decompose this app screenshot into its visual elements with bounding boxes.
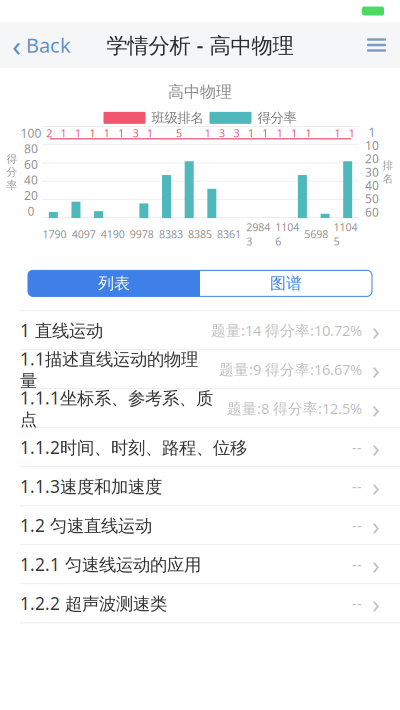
staticText: 100 [20, 125, 41, 141]
staticText: 班级排名 [151, 110, 203, 126]
button[interactable]: 1.1.3速度和加速度 [0, 467, 400, 505]
staticText: 1 [262, 126, 268, 140]
staticText: 1 [104, 126, 110, 140]
staticText: 1.2 匀速直线运动 [20, 514, 152, 537]
staticText: 1.1描述直线运动的物理量 [20, 347, 198, 391]
staticText: 1790 [42, 227, 66, 241]
staticText: 1.1.2时间、时刻、路程、位移 [20, 436, 247, 459]
staticText: ‹ [12, 25, 21, 64]
staticText: 学情分析 - 高中物理 [106, 31, 293, 59]
staticText: 率 [6, 179, 17, 192]
staticText: 1.2.1 匀速线运动的应用 [20, 553, 201, 576]
staticText: 1 [306, 126, 312, 140]
staticText: › [372, 586, 380, 620]
staticText: 5 [176, 126, 182, 140]
button[interactable]: 1.2 匀速直线运动 [0, 506, 400, 544]
staticText: 题量:8 得分率:12.5% [227, 399, 362, 418]
button[interactable]: 列表 [28, 270, 200, 296]
staticText: 40 [365, 177, 379, 193]
staticText: 3 [233, 126, 239, 140]
staticText: 排 [382, 159, 393, 172]
staticText: 1 [118, 126, 124, 140]
staticText: 80 [24, 141, 38, 157]
staticText: 1.2.2 超声波测速类 [20, 592, 167, 615]
staticText: 1.1.1坐标系、参考系、质点 [20, 386, 213, 430]
staticText: -- [352, 477, 362, 496]
button[interactable]: ‹ [0, 17, 71, 72]
staticText: -- [352, 516, 362, 535]
button[interactable]: 1.2.2 超声波测速类 [0, 584, 400, 622]
staticText: 9978 [130, 227, 154, 241]
staticText: 20 [24, 187, 38, 203]
staticText: 50 [365, 191, 379, 207]
staticText: 2 [46, 126, 52, 140]
staticText: › [372, 352, 380, 386]
button[interactable]: 1.1描述直线运动的物理量 [0, 350, 400, 388]
staticText: 得 [6, 152, 17, 165]
staticText: › [372, 508, 380, 542]
staticText: 高中物理 [168, 82, 232, 102]
staticText: › [372, 430, 380, 464]
staticText: › [372, 391, 380, 425]
staticText: 4190 [101, 227, 125, 241]
staticText: 3 [219, 126, 225, 140]
staticText: 1 直线运动 [20, 319, 103, 342]
staticText: 30 [365, 164, 379, 180]
staticText: 1 [277, 126, 283, 140]
staticText: 40 [24, 172, 38, 188]
staticText: 29843 [246, 220, 270, 248]
staticText: 题量:9 得分率:16.67% [219, 360, 362, 379]
staticText: 1 [75, 126, 81, 140]
staticText: 5698 [304, 227, 328, 241]
staticText: 4097 [72, 227, 96, 241]
staticText: -- [352, 594, 362, 613]
staticText: 8385 [188, 227, 212, 241]
staticText: › [372, 547, 380, 581]
staticText: 3 [133, 126, 139, 140]
staticText: 1.1.3速度和加速度 [20, 475, 162, 498]
staticText: Back [26, 32, 71, 58]
staticText: 1 [334, 126, 340, 140]
button[interactable]: 图谱 [200, 270, 372, 296]
staticText: 20 [365, 151, 379, 167]
staticText: 1 [147, 126, 153, 140]
staticText: 8383 [159, 227, 183, 241]
button[interactable]: Menu [353, 28, 400, 62]
staticText: › [372, 313, 380, 347]
staticText: -- [352, 555, 362, 574]
staticText: 1 [368, 124, 375, 140]
staticText: 列表 [98, 273, 130, 293]
staticText: 0 [27, 203, 34, 219]
staticText: 1 [349, 126, 355, 140]
staticText: 11045 [333, 220, 357, 248]
staticText: 图谱 [270, 273, 302, 293]
staticText: -- [352, 438, 362, 457]
button[interactable]: 1.1.1坐标系、参考系、质点 [0, 389, 400, 427]
staticText: 11046 [275, 220, 299, 248]
button[interactable]: 1.2.1 匀速线运动的应用 [0, 545, 400, 583]
staticText: 1 [89, 126, 95, 140]
staticText: 60 [365, 204, 379, 220]
button[interactable]: 1 直线运动 [0, 311, 400, 349]
staticText: 题量:14 得分率:10.72% [211, 321, 362, 340]
staticText: 1 [205, 126, 211, 140]
staticText: 10 [365, 137, 379, 153]
staticText: 名 [382, 172, 393, 185]
staticText: 得分率 [257, 110, 296, 126]
staticText: 60 [24, 156, 38, 172]
staticText: 1 [291, 126, 297, 140]
staticText: 8361 [217, 227, 241, 241]
button[interactable]: 1.1.2时间、时刻、路程、位移 [0, 428, 400, 466]
staticText: 1 [61, 126, 67, 140]
staticText: 分 [6, 165, 17, 179]
staticText: › [372, 469, 380, 503]
staticText: 1 [248, 126, 254, 140]
